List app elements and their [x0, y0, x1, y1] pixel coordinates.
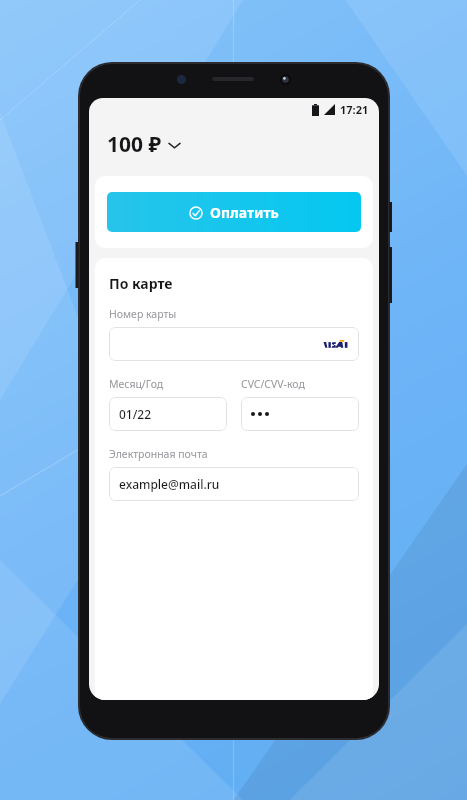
staticText: Оплатить — [210, 203, 279, 222]
staticText: 100 ₽ — [107, 130, 162, 159]
button[interactable]: 100 ₽ — [89, 128, 379, 161]
staticText: Месяц/Год — [109, 377, 164, 391]
staticText: 17:21 — [340, 102, 369, 117]
button[interactable]: example@mail.ru — [109, 467, 359, 501]
staticText: 01/22 — [119, 406, 152, 422]
staticText: Электронная почта — [109, 447, 208, 461]
staticText: CVC/CVV-код — [241, 377, 305, 391]
staticText: Номер карты — [109, 307, 177, 321]
staticText: По карте — [109, 274, 173, 293]
button[interactable]: Оплатить — [107, 192, 361, 232]
staticText: example@mail.ru — [119, 476, 220, 492]
button[interactable] — [241, 397, 359, 431]
button[interactable] — [109, 327, 359, 361]
button[interactable]: 01/22 — [109, 397, 227, 431]
